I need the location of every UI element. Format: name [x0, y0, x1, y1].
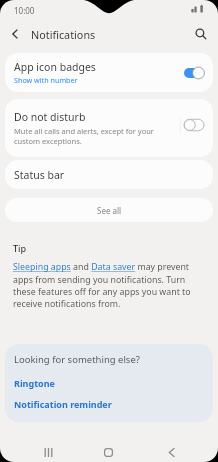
staticText: Tip — [13, 242, 27, 254]
button[interactable]: Do not disturb toggle — [181, 116, 207, 134]
staticText: App icon badges — [14, 60, 96, 74]
staticText: Looking for something else? — [14, 353, 140, 366]
staticText: Mute all calls and alerts, except for yo… — [14, 126, 174, 146]
staticText: Status bar — [14, 168, 65, 182]
button[interactable]: Back — [4, 23, 26, 45]
staticText: Notification reminder — [14, 398, 112, 410]
staticText: Show with number — [14, 75, 78, 85]
button[interactable]: Back — [153, 434, 190, 462]
staticText: 10:00 — [14, 5, 35, 16]
staticText: See all — [97, 205, 122, 216]
staticText: Sleeping apps and Data saver may prevent… — [13, 261, 195, 309]
staticText: Do not disturb — [14, 110, 86, 124]
button[interactable]: Ringtone — [14, 377, 213, 389]
button[interactable]: Notification reminder — [14, 398, 213, 410]
button[interactable]: Home — [90, 434, 127, 462]
staticText: Ringtone — [14, 377, 55, 389]
button[interactable]: Recents — [30, 434, 67, 462]
button[interactable]: App icon badges toggle — [181, 64, 207, 82]
button[interactable]: Search — [190, 23, 212, 45]
staticText: Notifications — [31, 27, 96, 42]
